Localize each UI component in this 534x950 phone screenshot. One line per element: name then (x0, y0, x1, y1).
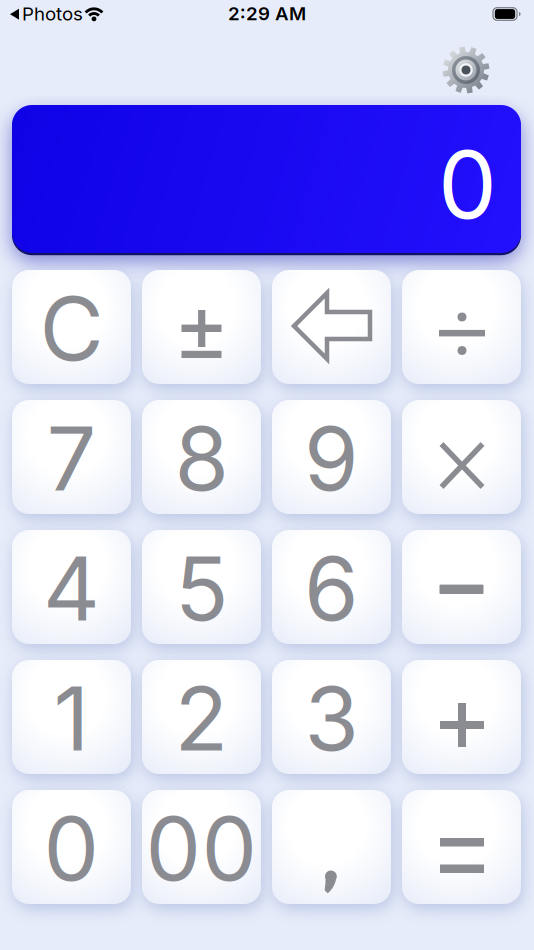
staticText: 1 (53, 667, 89, 770)
staticText: Photos (22, 3, 83, 25)
staticText: 00 (145, 797, 257, 900)
staticText: 0 (438, 129, 497, 239)
staticText: 3 (304, 667, 358, 770)
staticText: 7 (46, 407, 96, 510)
staticText: 2:29 AM (228, 2, 306, 24)
staticText: C (39, 277, 103, 380)
staticText: 9 (304, 407, 359, 510)
staticText: 6 (304, 537, 359, 640)
staticText: 5 (175, 537, 228, 640)
staticText: 8 (174, 407, 228, 510)
staticText: 2 (174, 667, 228, 770)
staticText: 4 (43, 537, 100, 640)
staticText: 0 (43, 797, 99, 900)
